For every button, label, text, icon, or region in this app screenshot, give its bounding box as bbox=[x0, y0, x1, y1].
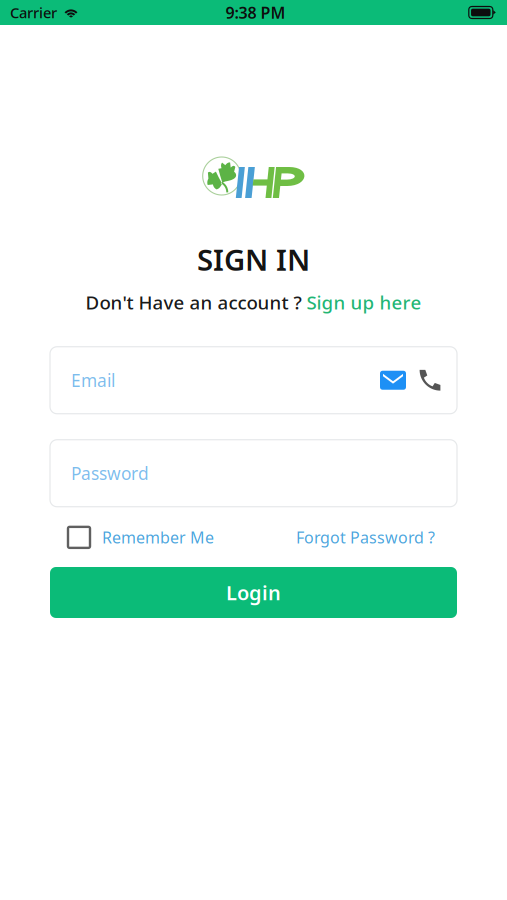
button[interactable]: Phone bbox=[418, 369, 441, 391]
staticText: 9:38 PM bbox=[225, 2, 285, 23]
staticText: Carrier bbox=[10, 3, 57, 22]
staticText: Forgot Password ? bbox=[296, 527, 435, 548]
staticText: SIGN IN bbox=[197, 240, 310, 279]
staticText: Password bbox=[71, 462, 149, 485]
staticText: Don't Have an account ? bbox=[85, 290, 306, 315]
staticText: Login bbox=[226, 579, 281, 606]
staticText: Sign up here bbox=[306, 290, 421, 315]
button[interactable]: Remember Me bbox=[68, 527, 214, 548]
staticText: Remember Me bbox=[102, 527, 214, 548]
button[interactable]: Forgot Password ? bbox=[296, 527, 435, 548]
button[interactable]: Sign up here bbox=[306, 290, 421, 315]
button[interactable]: Email bbox=[380, 371, 406, 390]
button[interactable]: Login bbox=[50, 567, 457, 618]
staticText: Email bbox=[71, 369, 115, 392]
